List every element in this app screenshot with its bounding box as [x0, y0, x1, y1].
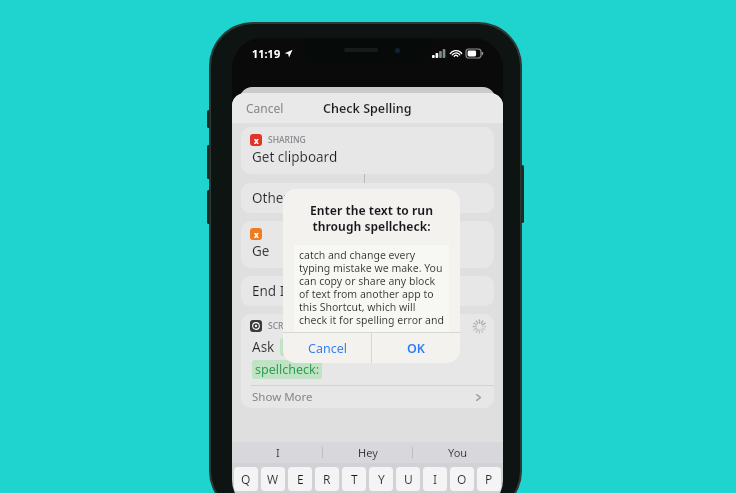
- staticText: Show More: [252, 389, 313, 405]
- staticText: Y: [378, 471, 385, 487]
- staticText: Cancel: [308, 340, 347, 357]
- staticText: x: [254, 135, 259, 146]
- button[interactable]: R: [315, 467, 339, 491]
- staticText: You: [448, 445, 468, 460]
- button[interactable]: I: [423, 467, 447, 491]
- staticText: Hey: [358, 445, 378, 460]
- button[interactable]: x: [241, 221, 494, 268]
- staticText: Get clipboard: [252, 148, 338, 166]
- button[interactable]: Q: [234, 467, 258, 491]
- button[interactable]: I: [232, 442, 323, 463]
- button[interactable]: SCR: [241, 314, 494, 408]
- button[interactable]: Show More: [252, 386, 483, 408]
- staticText: I: [276, 445, 280, 460]
- staticText: O: [457, 471, 467, 487]
- staticText: Enter the text to run through spellcheck…: [297, 202, 446, 234]
- button[interactable]: catch and change every typing mistake we…: [294, 245, 449, 332]
- staticText: R: [323, 471, 331, 487]
- staticText: spellcheck:: [255, 361, 319, 378]
- staticText: catch and change every typing mistake we…: [299, 248, 444, 329]
- staticText: x: [254, 229, 259, 240]
- staticText: End I: [252, 282, 285, 300]
- staticText: I: [433, 471, 438, 487]
- staticText: 11:19: [252, 46, 281, 61]
- button[interactable]: End I: [241, 276, 494, 306]
- staticText: OK: [407, 340, 425, 357]
- button[interactable]: E: [288, 467, 312, 491]
- button[interactable]: OK: [372, 333, 460, 363]
- staticText: P: [485, 471, 493, 487]
- button[interactable]: P: [477, 467, 501, 491]
- staticText: Q: [241, 471, 251, 487]
- staticText: Ge: [252, 242, 270, 260]
- staticText: Ask: [252, 338, 275, 356]
- button[interactable]: Cancel: [283, 333, 371, 363]
- staticText: SHARING: [268, 134, 306, 146]
- button[interactable]: O: [450, 467, 474, 491]
- button[interactable]: Hey: [323, 442, 413, 463]
- button[interactable]: W: [261, 467, 285, 491]
- staticText: T: [351, 471, 358, 487]
- button[interactable]: Y: [369, 467, 393, 491]
- staticText: U: [404, 471, 413, 487]
- button[interactable]: x: [241, 127, 494, 174]
- staticText: W: [267, 471, 279, 487]
- staticText: SCR: [268, 320, 284, 332]
- staticText: Other: [252, 189, 289, 207]
- button[interactable]: Cancel: [232, 94, 298, 122]
- staticText: Check Spelling: [323, 100, 412, 117]
- staticText: Enter the text to run through: [283, 339, 440, 355]
- button[interactable]: You: [413, 442, 503, 463]
- button[interactable]: T: [342, 467, 366, 491]
- staticText: Cancel: [246, 100, 284, 116]
- button[interactable]: Other: [241, 183, 494, 213]
- button[interactable]: U: [396, 467, 420, 491]
- staticText: E: [297, 471, 304, 487]
